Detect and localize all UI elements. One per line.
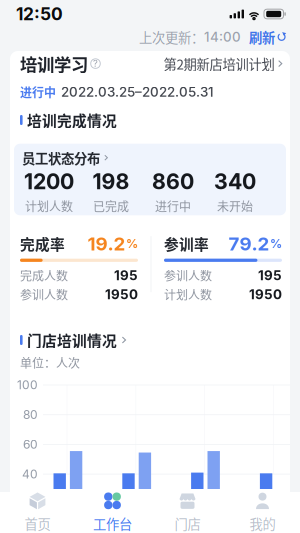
staticText: 860: [152, 169, 194, 194]
staticText: 1950: [105, 286, 138, 302]
staticText: 参训人数: [20, 286, 68, 303]
staticText: 进行中: [20, 83, 56, 101]
staticText: 进行中: [155, 197, 191, 215]
staticText: 参训人数: [164, 267, 212, 284]
staticText: ?: [93, 58, 98, 69]
staticText: %: [270, 236, 282, 251]
staticText: 单位：人次: [20, 354, 80, 371]
button[interactable]: 门店: [150, 492, 225, 533]
button[interactable]: 门店培训情况: [20, 333, 282, 346]
staticText: 60: [23, 437, 38, 452]
button[interactable]: 员工状态分布: [22, 152, 258, 164]
staticText: 1950: [249, 286, 282, 302]
staticText: 2022.03.25–2022.05.31: [61, 84, 214, 100]
staticText: 参训率: [164, 233, 209, 254]
staticText: 门店培训情况: [27, 329, 117, 351]
staticText: 首页: [24, 514, 50, 533]
staticText: 完成人数: [20, 267, 68, 284]
staticText: %: [126, 236, 138, 251]
staticText: 工作台: [93, 514, 132, 533]
staticText: 40: [22, 467, 38, 481]
staticText: 80: [23, 407, 38, 422]
staticText: 上次更新：: [139, 27, 204, 47]
staticText: 198: [92, 169, 129, 194]
button[interactable]: 刷新: [241, 28, 300, 46]
staticText: 门店: [174, 514, 200, 533]
button[interactable]: 我的: [225, 492, 300, 533]
button[interactable]: 说明: [88, 59, 100, 69]
staticText: 未开始: [217, 197, 253, 215]
staticText: 79.2: [228, 232, 269, 255]
staticText: 195: [114, 267, 138, 283]
button[interactable]: 首页: [0, 492, 75, 533]
button[interactable]: 工作台: [75, 492, 150, 533]
staticText: 刷新: [249, 27, 275, 47]
staticText: 培训完成情况: [27, 109, 117, 131]
staticText: 14:00: [204, 29, 241, 45]
staticText: 员工状态分布: [22, 148, 100, 167]
staticText: 我的: [249, 514, 275, 533]
staticText: 1200: [24, 169, 74, 194]
staticText: 培训学习: [20, 51, 88, 76]
staticText: 12:50: [16, 3, 63, 24]
staticText: 计划人数: [164, 286, 212, 303]
staticText: 195: [258, 267, 282, 283]
staticText: 计划人数: [25, 197, 73, 215]
staticText: 340: [214, 169, 256, 194]
staticText: 100: [17, 378, 38, 392]
staticText: 已完成: [93, 197, 129, 215]
button[interactable]: 第2期新店培训计划: [163, 54, 282, 73]
staticText: 完成率: [20, 233, 65, 254]
staticText: 19.2: [87, 232, 125, 255]
staticText: 第2期新店培训计划: [163, 54, 274, 73]
